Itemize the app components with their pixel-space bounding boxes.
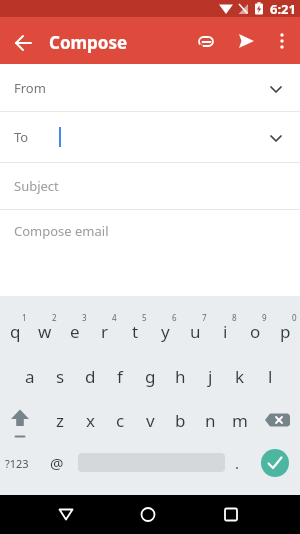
button[interactable]: y [150,309,180,353]
button[interactable] [191,25,221,57]
button[interactable]: @ [42,441,72,485]
staticText: 6:21 [270,0,296,17]
staticText: r [101,320,109,343]
staticText: h [175,365,186,388]
staticText: 5 [142,312,147,323]
button[interactable] [48,497,84,532]
staticText: 2 [52,312,57,323]
staticText: e [70,320,80,343]
button[interactable] [2,398,40,442]
button[interactable]: b [165,398,195,442]
staticText: z [56,409,64,432]
staticText: 0 [292,312,297,323]
button[interactable]: To [0,112,300,162]
staticText: x [86,409,95,432]
staticText: q [10,320,21,343]
staticText: 9 [262,312,267,323]
button[interactable]: e [60,309,90,353]
button[interactable]: . [225,441,249,485]
button[interactable]: o [240,309,270,353]
staticText: a [25,365,35,388]
staticText: n [205,409,216,432]
staticText: 4 [112,312,117,323]
staticText: f [117,365,123,388]
button[interactable]: Compose email [0,210,300,297]
button[interactable]: x [75,398,105,442]
staticText: b [175,409,186,432]
staticText: @ [50,453,64,473]
staticText: g [145,365,156,388]
button[interactable]: Subject [0,163,300,209]
button[interactable]: w [30,309,60,353]
button[interactable] [260,398,298,442]
button[interactable]: t [120,309,150,353]
button[interactable] [269,25,297,57]
staticText: k [235,365,245,388]
button[interactable]: f [105,354,135,398]
button[interactable]: a [15,354,45,398]
staticText: 6 [172,312,177,323]
staticText: m [232,409,248,432]
staticText: 7 [202,312,207,323]
staticText: v [146,409,155,432]
staticText: 8 [232,312,237,323]
button[interactable]: n [195,398,225,442]
staticText: o [250,320,261,343]
button[interactable]: l [255,354,285,398]
staticText: i [223,320,228,343]
staticText: Compose [49,31,128,54]
button[interactable]: From [0,64,300,111]
button[interactable]: m [225,398,255,442]
button[interactable]: g [135,354,165,398]
staticText: To [14,128,29,146]
button[interactable]: k [225,354,255,398]
button[interactable]: u [180,309,210,353]
button[interactable]: h [165,354,195,398]
staticText: 3 [82,312,87,323]
staticText: j [208,365,213,388]
button[interactable]: c [105,398,135,442]
staticText: l [268,365,273,388]
button[interactable]: z [45,398,75,442]
staticText: p [280,320,291,343]
button[interactable] [8,27,40,59]
button[interactable] [213,497,249,532]
button[interactable]: j [195,354,225,398]
button[interactable] [261,449,289,477]
button[interactable]: p [270,309,300,353]
staticText: s [56,365,65,388]
staticText: From [14,79,46,97]
staticText: Subject [14,177,59,195]
button[interactable]: q [0,309,30,353]
staticText: Compose email [14,222,109,240]
button[interactable]: r [90,309,120,353]
button[interactable] [130,497,166,532]
staticText: 1 [22,312,27,323]
button[interactable]: ?123 [0,441,34,485]
staticText: u [190,320,201,343]
staticText: . [235,453,240,473]
staticText: t [132,320,139,343]
staticText: ?123 [5,456,29,471]
button[interactable] [231,25,261,57]
button[interactable]: d [75,354,105,398]
button[interactable]: v [135,398,165,442]
staticText: y [161,320,170,343]
staticText: d [85,365,96,388]
button[interactable]: s [45,354,75,398]
staticText: w [38,320,52,343]
staticText: c [116,409,125,432]
button[interactable]: i [210,309,240,353]
